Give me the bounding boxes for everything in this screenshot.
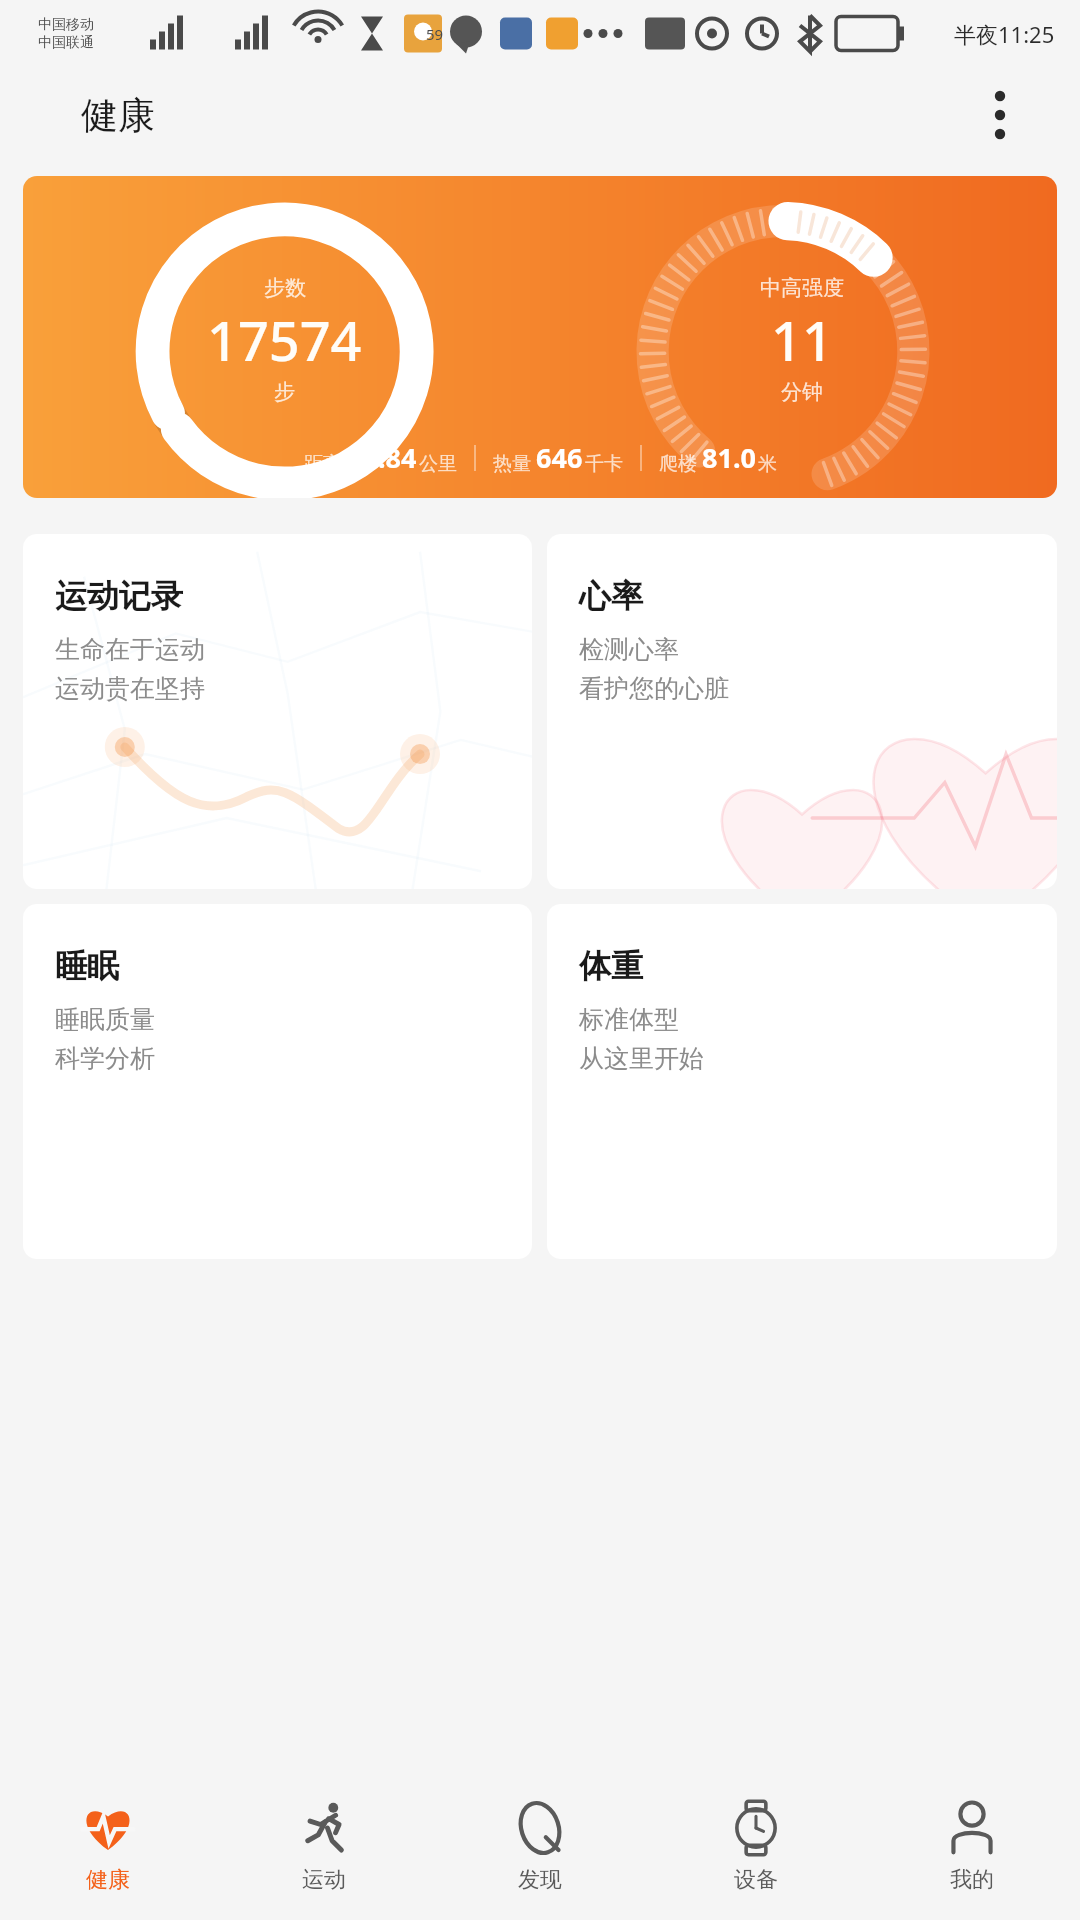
- staticText: 81.0: [702, 439, 756, 476]
- staticText: 看护您的心脏: [579, 673, 729, 704]
- staticText: 检测心率: [579, 634, 679, 665]
- staticText: 11: [771, 303, 833, 377]
- staticText: 公里: [419, 452, 457, 476]
- staticText: 步数: [264, 275, 306, 301]
- button[interactable]: More options: [972, 87, 1028, 143]
- button[interactable]: 设备: [648, 1772, 864, 1920]
- staticText: 12.84: [347, 439, 417, 476]
- staticText: 步: [274, 379, 295, 405]
- staticText: 体重: [579, 946, 643, 986]
- staticText: 米: [758, 452, 777, 476]
- staticText: 热量: [493, 452, 531, 476]
- staticText: 半夜11:25: [954, 19, 1055, 49]
- staticText: 17574: [207, 303, 362, 377]
- staticText: 59: [426, 24, 444, 44]
- staticText: 运动记录: [55, 576, 183, 616]
- staticText: 中国联通: [38, 34, 94, 52]
- staticText: 科学分析: [55, 1043, 155, 1074]
- staticText: 设备: [734, 1866, 778, 1894]
- button[interactable]: 发现: [432, 1772, 648, 1920]
- button[interactable]: 体重: [547, 904, 1057, 1259]
- staticText: 发现: [518, 1866, 562, 1894]
- staticText: 健康: [81, 92, 155, 139]
- staticText: 从这里开始: [579, 1043, 704, 1074]
- staticText: 生命在于运动: [55, 634, 205, 665]
- staticText: 千卡: [585, 452, 623, 476]
- button[interactable]: 睡眠: [23, 904, 532, 1259]
- button[interactable]: 我的: [864, 1772, 1080, 1920]
- button[interactable]: 步数: [23, 176, 1057, 498]
- button[interactable]: 运动记录: [23, 534, 532, 889]
- staticText: 睡眠: [55, 946, 119, 986]
- staticText: 运动: [302, 1866, 346, 1894]
- staticText: 睡眠质量: [55, 1004, 155, 1035]
- staticText: 分钟: [781, 379, 823, 405]
- staticText: 运动贵在坚持: [55, 673, 205, 704]
- staticText: 中国移动: [38, 16, 94, 34]
- staticText: 距离: [304, 452, 342, 476]
- staticText: 标准体型: [579, 1004, 679, 1035]
- staticText: 爬楼: [659, 452, 697, 476]
- staticText: 心率: [579, 576, 643, 616]
- button[interactable]: 健康: [0, 1772, 216, 1920]
- button[interactable]: 运动: [216, 1772, 432, 1920]
- staticText: 中高强度: [760, 275, 844, 301]
- button[interactable]: 心率: [547, 534, 1057, 889]
- staticText: 我的: [950, 1866, 994, 1894]
- staticText: 646: [536, 439, 583, 476]
- staticText: 健康: [86, 1866, 130, 1894]
